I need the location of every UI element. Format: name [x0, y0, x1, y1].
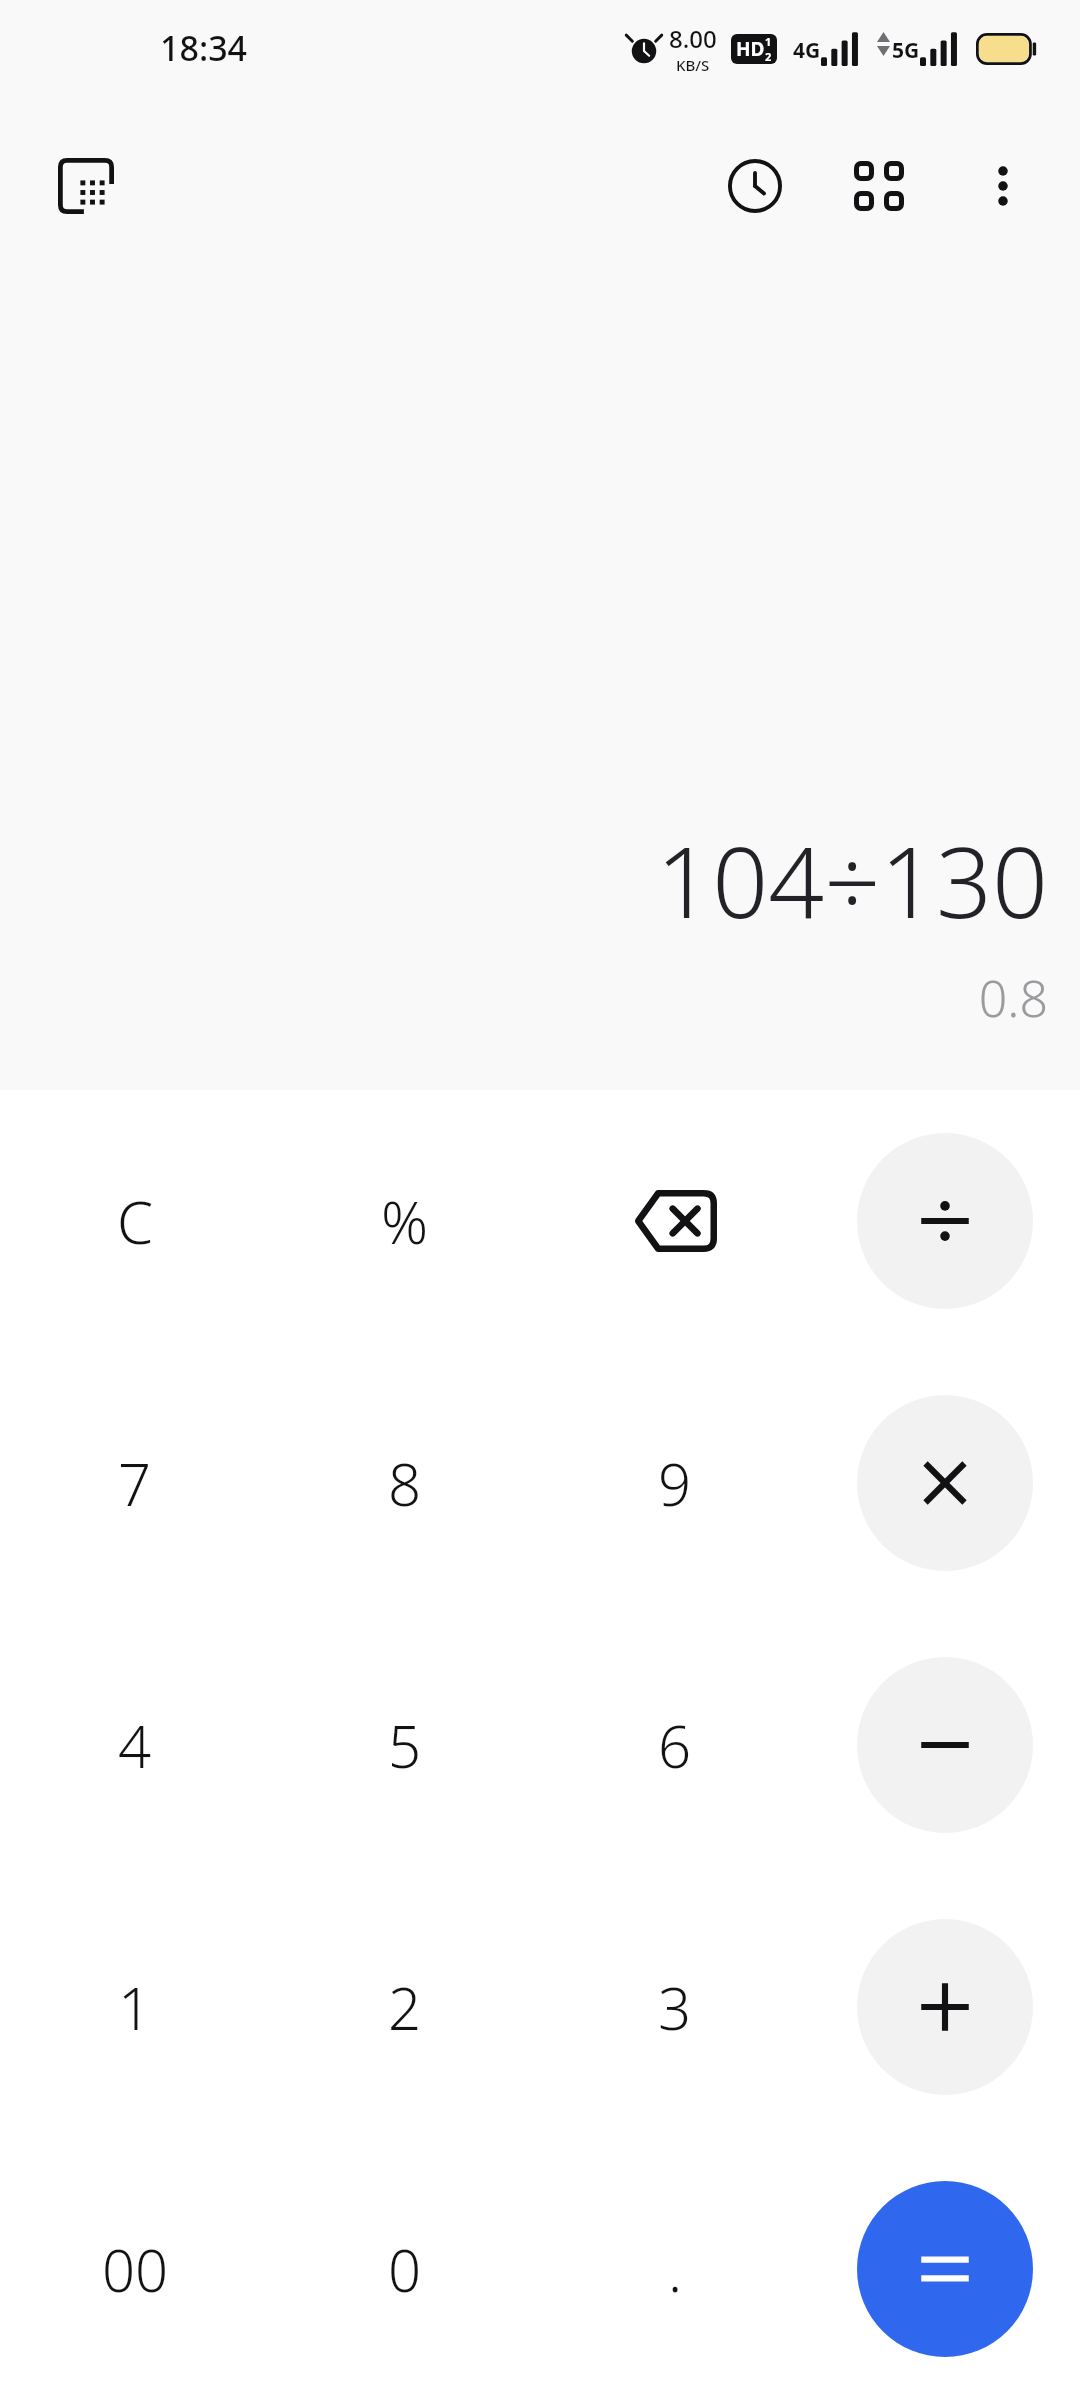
staticText: .: [668, 2230, 683, 2309]
button[interactable]: 6: [540, 1614, 810, 1876]
button[interactable]: 00: [0, 2138, 270, 2400]
staticText: 18:34: [160, 25, 248, 71]
staticText: 9: [658, 1444, 692, 1523]
button[interactable]: 7: [0, 1352, 270, 1614]
button[interactable]: .: [540, 2138, 810, 2400]
button[interactable]: 3: [540, 1876, 810, 2138]
button[interactable]: More options: [964, 147, 1042, 225]
staticText: %: [381, 1182, 429, 1261]
button[interactable]: History: [716, 147, 794, 225]
button[interactable]: C: [0, 1090, 270, 1352]
staticText: 5: [388, 1706, 422, 1785]
staticText: 0.8: [978, 964, 1048, 1032]
button[interactable]: 0: [270, 2138, 540, 2400]
staticText: 1: [765, 34, 772, 49]
button[interactable]: Plus: [810, 1876, 1080, 2138]
staticText: 00: [102, 2230, 169, 2309]
staticText: 1: [118, 1968, 152, 2047]
staticText: 5G: [892, 36, 920, 65]
staticText: 0: [388, 2230, 422, 2309]
staticText: 4G: [793, 36, 821, 65]
staticText: 8: [388, 1444, 422, 1523]
button[interactable]: 8: [270, 1352, 540, 1614]
button[interactable]: Converters: [840, 147, 918, 225]
staticText: 3: [658, 1968, 692, 2047]
staticText: C: [117, 1182, 154, 1261]
button[interactable]: 1: [0, 1876, 270, 2138]
button[interactable]: Backspace: [540, 1090, 810, 1352]
staticText: 7: [118, 1444, 152, 1523]
button[interactable]: 4: [0, 1614, 270, 1876]
staticText: 2: [765, 49, 772, 64]
button[interactable]: Minus: [810, 1614, 1080, 1876]
button[interactable]: Multiply: [810, 1352, 1080, 1614]
staticText: 104÷130: [656, 813, 1048, 946]
staticText: 4: [118, 1706, 152, 1785]
staticText: HD: [736, 36, 765, 62]
staticText: KB/S: [676, 55, 710, 75]
button[interactable]: Floating window: [50, 150, 122, 222]
button[interactable]: %: [270, 1090, 540, 1352]
button[interactable]: Divide: [810, 1090, 1080, 1352]
button[interactable]: Equals: [810, 2138, 1080, 2400]
staticText: 8.00: [669, 22, 717, 55]
button[interactable]: 5: [270, 1614, 540, 1876]
staticText: 6: [658, 1706, 692, 1785]
button[interactable]: 2: [270, 1876, 540, 2138]
staticText: 2: [388, 1968, 422, 2047]
button[interactable]: 9: [540, 1352, 810, 1614]
